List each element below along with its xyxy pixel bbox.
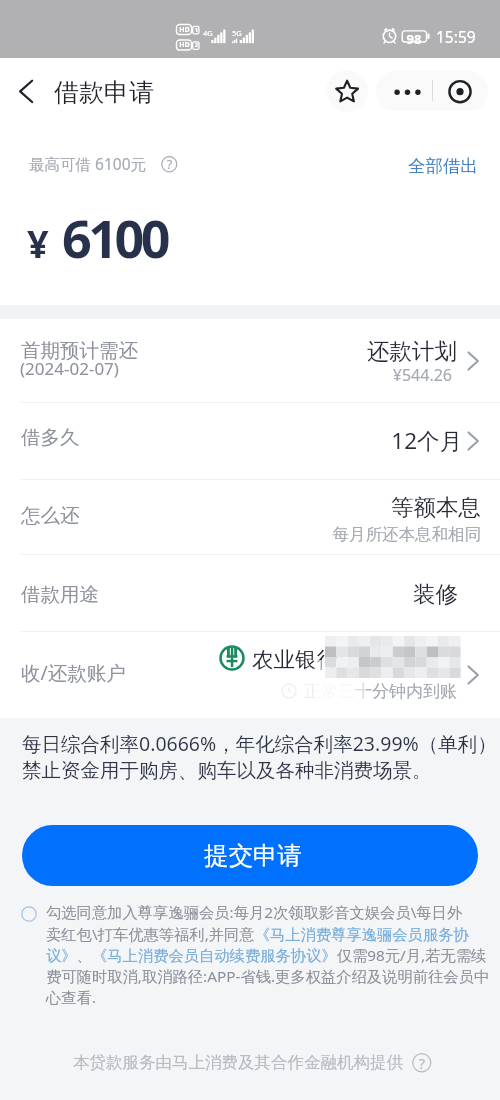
button[interactable]: 本贷款服务由马上消费及其合作金融机构提供 (70, 1050, 435, 1074)
button[interactable]: Focus mode (432, 71, 488, 111)
staticText: 借款申请 (54, 77, 154, 108)
staticText: 本贷款服务由马上消费及其合作金融机构提供 (73, 1052, 403, 1073)
staticText: 等额本息 (300, 493, 481, 521)
staticText: 1 (194, 26, 199, 34)
staticText: 6100 (62, 202, 167, 273)
staticText: 最高可借 6100元 (29, 153, 146, 174)
button[interactable]: 最高可借 6100元 (20, 148, 180, 180)
staticText: ¥ (27, 217, 49, 269)
staticText: 还款计划 (300, 337, 457, 365)
staticText: 每月所还本息和相同 (280, 524, 481, 545)
staticText: 4G (203, 28, 213, 38)
staticText: 全部借出 (408, 155, 478, 177)
staticText: 每日综合利率0.0666%，年化综合利率23.99%（单利） (22, 730, 497, 757)
staticText: HD (178, 40, 191, 50)
button[interactable]: 全部借出 (398, 151, 478, 181)
staticText: 2 (194, 41, 199, 49)
staticText: 装修 (300, 580, 458, 608)
button[interactable]: 勾选同意加入尊享逸骊会员:每月2次领取影音文娱会员\每日外 卖红包\打车优惠等福… (15, 898, 485, 1008)
button[interactable]: More options (376, 71, 432, 111)
button[interactable]: 怎么还 (0, 479, 500, 554)
staticText: 借款用途 (21, 582, 99, 607)
staticText: 借多久 (21, 425, 80, 450)
staticText: 首期预计需还 (21, 338, 138, 363)
staticText: 收/还款账户 (21, 659, 126, 686)
button[interactable]: 借款用途 (0, 554, 500, 631)
staticText: 正常三十分钟内到账 (304, 681, 457, 702)
staticText: 12个月 (300, 425, 462, 456)
staticText: ¥544.26 (300, 364, 452, 386)
staticText: 怎么还 (21, 503, 80, 528)
button[interactable]: 收/还款账户 (0, 631, 500, 718)
staticText: 5G (232, 28, 242, 38)
staticText: 勾选同意加入尊享逸骊会员:每月2次领取影音文娱会员\每日外 卖红包\打车优惠等福… (46, 902, 491, 1008)
button[interactable]: 提交申请 (22, 825, 478, 886)
staticText: HD (178, 25, 191, 35)
staticText: 98 (402, 30, 426, 48)
button[interactable]: Back (2, 70, 44, 112)
button[interactable]: 首期预计需还 (0, 319, 500, 402)
staticText: 农业银行 (252, 646, 338, 673)
staticText: ? (412, 1053, 432, 1073)
button[interactable]: Favorite (326, 70, 368, 112)
staticText: 禁止资金用于购房、购车以及各种非消费场景。 (22, 758, 432, 783)
button[interactable]: 借多久 (0, 402, 500, 479)
staticText: 15:59 (436, 26, 476, 47)
staticText: (2024-02-07) (20, 357, 119, 380)
staticText: 提交申请 (204, 840, 302, 871)
staticText: ? (161, 156, 178, 173)
